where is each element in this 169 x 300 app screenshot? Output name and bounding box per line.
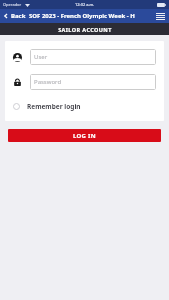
staticText: SAILOR ACCOUNT [58,26,112,33]
button[interactable]: User [30,49,156,65]
button[interactable]: LOG IN [8,129,161,142]
button[interactable]: Menu [152,9,169,23]
staticText: LOG IN [73,132,96,140]
staticText: User [34,53,48,61]
staticText: SOF 2023 - French Olympic Week - H [29,12,152,20]
staticText: Operador [3,2,22,7]
button[interactable]: Remember login [5,100,164,113]
staticText: Back [11,12,26,20]
staticText: Remember login [27,102,81,111]
button[interactable]: Back [0,9,28,23]
button[interactable]: Password [30,74,156,90]
staticText: 12:02 a.m. [75,2,95,7]
staticText: Password [34,78,62,86]
